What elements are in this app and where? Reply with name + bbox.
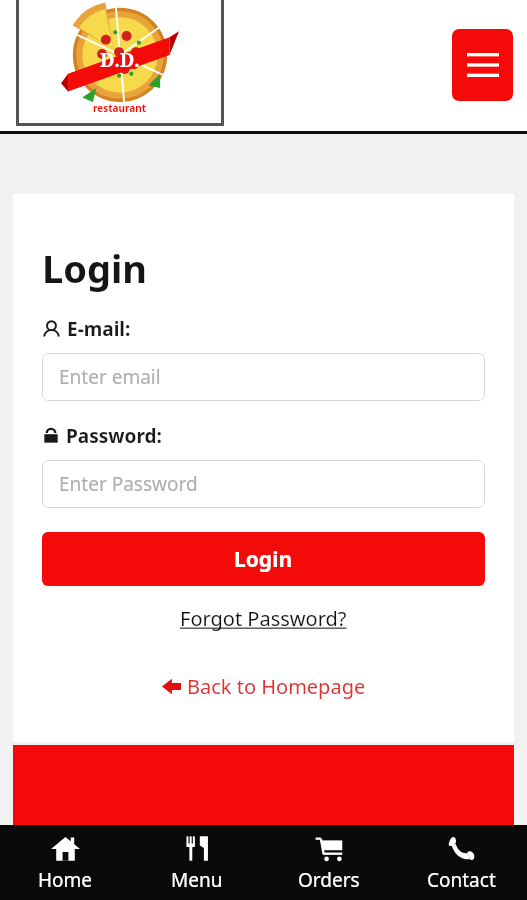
button[interactable]: Contact [395,825,527,900]
staticText: Password: [66,423,162,449]
button[interactable]: Enter Password [42,460,485,508]
staticText: Back to Homepage [187,673,366,700]
button[interactable]: Login [42,532,485,586]
staticText: Orders [298,867,360,893]
staticText: D.D. [100,47,140,73]
staticText: E-mail: [67,316,131,342]
button[interactable]: Forgot Password? [42,596,485,641]
button[interactable]: Menu [131,825,263,900]
button[interactable]: Menu [452,29,513,101]
staticText: Login [234,545,293,574]
staticText: restaurant [93,101,147,115]
staticText: Contact [427,867,496,893]
staticText: Home [38,867,93,893]
staticText: Forgot Password? [180,605,347,632]
button[interactable]: Enter email [42,353,485,401]
button[interactable]: Orders [263,825,395,900]
staticText: Enter email [59,364,161,390]
staticText: Menu [171,867,223,893]
button[interactable]: Home [0,825,131,900]
staticText: Login [42,242,148,294]
button[interactable]: D.D. Restaurant logo [19,0,221,123]
button[interactable]: Back to Homepage [42,667,485,706]
staticText: Enter Password [59,471,198,497]
